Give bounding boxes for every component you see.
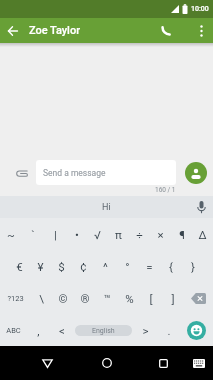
button[interactable] xyxy=(153,19,177,43)
staticText: ` xyxy=(31,228,35,241)
staticText: √ xyxy=(94,228,101,241)
button[interactable] xyxy=(184,282,213,314)
staticText: . xyxy=(167,324,171,337)
button[interactable]: © xyxy=(52,282,74,314)
button[interactable]: < xyxy=(50,314,73,346)
staticText: } xyxy=(191,260,195,273)
staticText: € xyxy=(16,260,23,273)
button[interactable]: { xyxy=(160,250,182,282)
button[interactable]: ` xyxy=(22,218,44,250)
staticText: = xyxy=(146,260,153,273)
staticText: ^ xyxy=(103,260,108,273)
staticText: π xyxy=(115,228,122,241)
staticText: < xyxy=(59,324,65,337)
button[interactable] xyxy=(0,18,25,43)
button[interactable]: = xyxy=(138,250,160,282)
button[interactable]: • xyxy=(66,218,87,250)
button[interactable] xyxy=(194,200,208,214)
button[interactable]: € xyxy=(9,250,30,282)
button[interactable]: ?123 xyxy=(0,282,30,314)
staticText: ® xyxy=(80,292,90,305)
staticText: © xyxy=(58,292,68,305)
staticText: % xyxy=(125,292,134,305)
button[interactable]: % xyxy=(118,282,140,314)
button[interactable]: Δ xyxy=(192,218,213,250)
staticText: Hi xyxy=(102,202,111,213)
button[interactable]: ABC xyxy=(0,314,27,346)
staticText: { xyxy=(169,260,173,273)
staticText: ° xyxy=(125,260,130,273)
button[interactable]: Send a message xyxy=(36,160,176,185)
staticText: 10:00 xyxy=(191,5,209,13)
staticText: • xyxy=(75,228,79,241)
button[interactable] xyxy=(192,356,206,370)
button[interactable]: Hi xyxy=(0,196,213,218)
staticText: > xyxy=(142,324,149,337)
staticText: ABC xyxy=(6,326,21,335)
staticText: Send a message xyxy=(43,168,106,178)
button[interactable]: \ xyxy=(30,282,52,314)
button[interactable]: ® xyxy=(74,282,96,314)
button[interactable]: √ xyxy=(87,218,108,250)
button[interactable]: × xyxy=(150,218,171,250)
button[interactable] xyxy=(100,356,114,370)
staticText: ¢ xyxy=(80,260,87,273)
button[interactable]: π xyxy=(108,218,129,250)
button[interactable]: . xyxy=(157,314,180,346)
button[interactable]: ] xyxy=(162,282,184,314)
staticText: \ xyxy=(39,292,44,305)
button[interactable]: English xyxy=(73,314,134,346)
button[interactable]: [ xyxy=(140,282,162,314)
staticText: ] xyxy=(171,292,175,305)
staticText: ~ xyxy=(7,228,15,241)
button[interactable]: , xyxy=(27,314,50,346)
staticText: ™ xyxy=(103,292,111,305)
button[interactable]: ~ xyxy=(0,218,22,250)
staticText: [ xyxy=(149,292,153,305)
staticText: ¶ xyxy=(179,228,185,241)
staticText: ÷ xyxy=(136,228,143,241)
button[interactable]: ¶ xyxy=(171,218,192,250)
button[interactable]: | xyxy=(44,218,66,250)
button[interactable]: ÷ xyxy=(129,218,150,250)
staticText: Δ xyxy=(198,228,207,241)
button[interactable] xyxy=(180,314,213,346)
button[interactable] xyxy=(40,356,54,370)
staticText: , xyxy=(37,324,40,337)
staticText: $ xyxy=(58,260,65,273)
button[interactable] xyxy=(156,356,170,370)
button[interactable]: ° xyxy=(116,250,138,282)
button[interactable]: > xyxy=(134,314,157,346)
button[interactable]: $ xyxy=(51,250,72,282)
button[interactable] xyxy=(191,21,211,41)
staticText: ?123 xyxy=(7,294,24,303)
staticText: Zoe Taylor xyxy=(29,24,81,37)
button[interactable]: ^ xyxy=(94,250,116,282)
staticText: | xyxy=(54,228,57,241)
button[interactable]: ™ xyxy=(96,282,118,314)
button[interactable]: } xyxy=(182,250,204,282)
staticText: ¥ xyxy=(37,260,44,273)
button[interactable] xyxy=(14,165,30,181)
staticText: English xyxy=(92,327,115,335)
button[interactable]: ¥ xyxy=(30,250,51,282)
staticText: × xyxy=(157,228,164,241)
button[interactable]: ¢ xyxy=(72,250,94,282)
staticText: 160 / 1 xyxy=(155,186,176,194)
button[interactable] xyxy=(185,162,207,184)
